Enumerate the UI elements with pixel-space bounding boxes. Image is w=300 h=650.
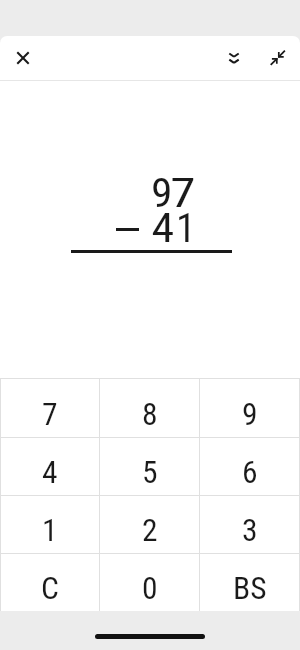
button[interactable]: 7 <box>1 379 99 437</box>
button[interactable]: 4 <box>1 438 99 495</box>
button[interactable]: BS <box>200 554 299 611</box>
button[interactable]: C <box>1 554 99 611</box>
button[interactable]: 6 <box>200 438 299 495</box>
button[interactable]: 3 <box>200 496 299 553</box>
staticText: 6 <box>242 454 258 491</box>
button[interactable] <box>213 36 255 80</box>
button[interactable]: 2 <box>100 496 199 553</box>
button[interactable]: 5 <box>100 438 199 495</box>
button[interactable]: 0 <box>100 554 199 611</box>
staticText: 9 <box>151 170 173 217</box>
staticText: 1 <box>176 205 196 252</box>
staticText: 7 <box>170 170 196 217</box>
staticText: BS <box>233 570 267 607</box>
button[interactable] <box>2 36 44 80</box>
staticText: 4 <box>42 454 58 491</box>
staticText: 0 <box>142 570 158 607</box>
button[interactable]: 1 <box>1 496 99 553</box>
staticText: 3 <box>242 512 258 549</box>
staticText: 5 <box>142 454 158 491</box>
staticText: 4 <box>151 205 174 252</box>
staticText: C <box>41 570 59 607</box>
staticText: 2 <box>142 512 158 549</box>
staticText: 9 <box>242 396 258 433</box>
staticText: 1 <box>42 512 58 549</box>
button[interactable]: 9 <box>200 379 299 437</box>
button[interactable]: 8 <box>100 379 199 437</box>
staticText: 8 <box>142 396 158 433</box>
staticText: 7 <box>42 396 58 433</box>
button[interactable] <box>258 36 300 80</box>
